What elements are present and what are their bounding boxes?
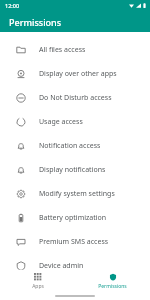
button[interactable]: Permissions	[75, 270, 150, 292]
staticText: Usage access	[39, 117, 83, 127]
button[interactable]: Device admin	[0, 254, 150, 270]
staticText: Display over other apps	[39, 69, 117, 79]
button[interactable]: Notification access	[0, 134, 150, 158]
button[interactable]: All files access	[0, 38, 150, 62]
button[interactable]: Do Not Disturb access	[0, 86, 150, 110]
staticText: Notification access	[39, 141, 101, 151]
button[interactable]: Premium SMS access	[0, 230, 150, 254]
staticText: Permissions	[98, 283, 127, 290]
button[interactable]: Usage access	[0, 110, 150, 134]
button[interactable]: Apps	[0, 270, 75, 292]
button[interactable]: Battery optimization	[0, 206, 150, 230]
staticText: Device admin	[39, 261, 84, 270]
staticText: Permissions	[9, 16, 62, 28]
staticText: Premium SMS access	[39, 237, 109, 247]
button[interactable]: Display notifications	[0, 158, 150, 182]
staticText: Apps	[32, 283, 44, 290]
staticText: Modify system settings	[39, 189, 115, 199]
staticText: Do Not Disturb access	[39, 93, 112, 103]
button[interactable]: Display over other apps	[0, 62, 150, 86]
staticText: Battery optimization	[39, 213, 107, 223]
staticText: Display notifications	[39, 165, 106, 175]
staticText: 12:00	[5, 2, 20, 9]
button[interactable]: Modify system settings	[0, 182, 150, 206]
staticText: All files access	[39, 45, 86, 55]
